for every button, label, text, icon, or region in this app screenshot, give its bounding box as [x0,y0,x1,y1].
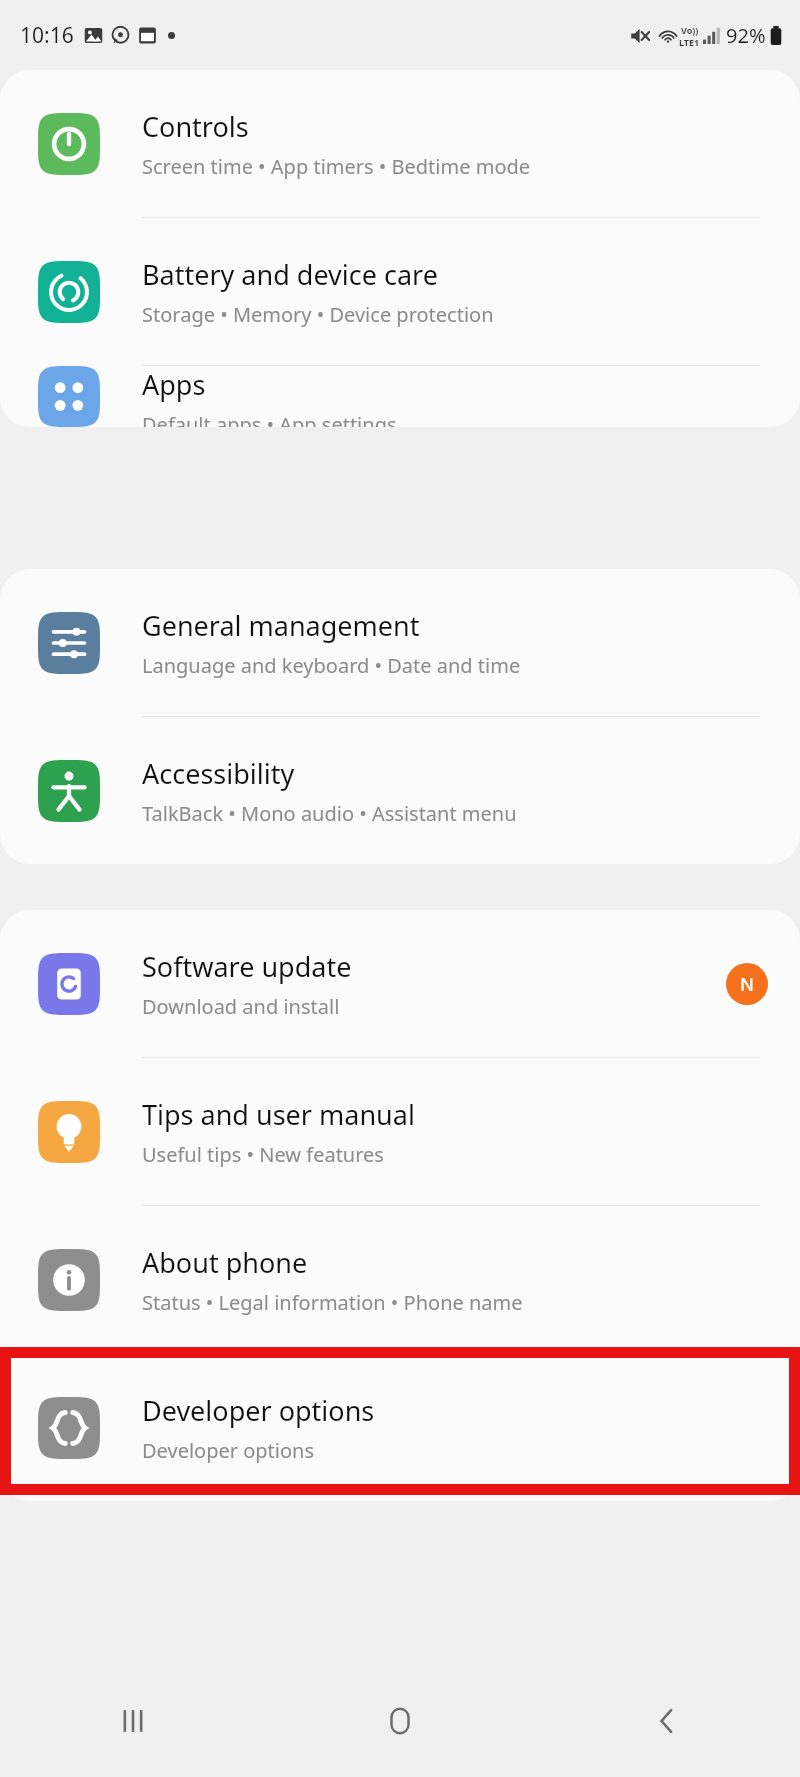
button[interactable]: Home [266,1665,533,1777]
staticText: Battery and device care [142,256,438,293]
staticText: LTE1 [679,36,700,48]
button[interactable]: Tips and user manual [0,1058,800,1205]
button[interactable]: About phone [0,1206,800,1353]
staticText: 92% [726,22,766,49]
staticText: TalkBack • Mono audio • Assistant menu [142,800,517,827]
staticText: About phone [142,1244,308,1281]
staticText: Language and keyboard • Date and time [142,652,521,679]
staticText: Settings [44,97,174,143]
button[interactable]: Controls [0,70,800,217]
button[interactable]: General management [0,569,800,716]
staticText: Software update [142,948,352,985]
staticText: 10:16 [20,21,74,50]
button[interactable]: Apps [0,366,800,427]
staticText: Controls [142,108,249,145]
staticText: Developer options [142,1437,315,1464]
staticText: General management [142,607,420,644]
button[interactable]: Software update [0,910,800,1057]
staticText: Screen time • App timers • Bedtime mode [142,153,531,180]
staticText: Vo)) [681,24,699,36]
staticText: Developer options [142,1392,375,1429]
button[interactable]: Recents [0,1665,266,1777]
staticText: Accessibility [142,755,295,792]
staticText: Default apps • App settings [142,411,397,427]
button[interactable]: Developer options [0,1354,800,1501]
button[interactable]: Accessibility [0,717,800,864]
staticText: Tips and user manual [142,1096,415,1133]
staticText: Apps [142,366,206,403]
staticText: Status • Legal information • Phone name [142,1289,523,1316]
button[interactable]: Back [533,1665,800,1777]
staticText: Download and install [142,993,340,1020]
staticText: Storage • Memory • Device protection [142,301,494,328]
staticText: Useful tips • New features [142,1141,384,1168]
button[interactable]: Battery and device care [0,218,800,365]
staticText: N [740,972,754,997]
